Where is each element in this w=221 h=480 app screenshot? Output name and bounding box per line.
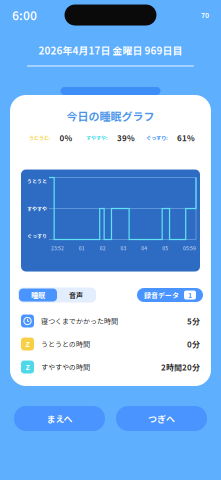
staticText: うとうと	[27, 177, 47, 185]
staticText: 録音データ	[144, 290, 179, 300]
staticText: 2時間20分	[161, 361, 200, 373]
button[interactable]: 睡眠	[19, 288, 57, 301]
button[interactable]: 音声	[57, 288, 95, 301]
staticText: まえへ	[46, 412, 72, 425]
staticText: 寝つくまでかかった時間	[41, 316, 118, 326]
staticText: 睡眠	[31, 290, 45, 300]
staticText: 0分	[187, 338, 200, 350]
button[interactable]: Z	[21, 355, 200, 378]
staticText: 05:59	[183, 244, 196, 252]
button[interactable]: 録音データ	[137, 288, 203, 302]
staticText: すやすやの時間	[41, 362, 90, 372]
staticText: 03	[120, 244, 126, 252]
staticText: 6:00	[12, 6, 37, 24]
staticText: 音声	[69, 290, 83, 300]
staticText: 0%	[59, 132, 72, 143]
staticText: ぐっすり:	[146, 134, 168, 142]
staticText: うとうとの時間	[41, 339, 90, 349]
staticText: 01	[79, 244, 85, 252]
staticText: すやすや	[27, 205, 47, 212]
button[interactable]: Z	[21, 332, 200, 355]
staticText: 2026年4月17日 金曜日 969日目	[38, 43, 182, 57]
staticText: ぐっすり	[27, 232, 47, 239]
staticText: つぎへ	[148, 412, 175, 425]
staticText: 61%	[177, 132, 195, 143]
staticText: 39%	[117, 132, 135, 143]
staticText: Z	[25, 339, 29, 349]
staticText: すやすや:	[86, 134, 108, 142]
button[interactable]: まえへ	[14, 406, 105, 431]
button[interactable]: 寝つくまでかかった時間	[21, 309, 200, 332]
staticText: 1	[188, 290, 192, 300]
staticText: 5分	[187, 315, 200, 327]
staticText: 今日の睡眠グラフ	[66, 108, 154, 124]
staticText: Z	[25, 362, 29, 372]
button[interactable]: つぎへ	[116, 406, 207, 431]
staticText: 02	[100, 244, 106, 252]
staticText: 05	[162, 244, 168, 252]
staticText: 04	[141, 244, 147, 252]
staticText: 70	[201, 10, 209, 20]
staticText: 23:52	[51, 244, 64, 252]
staticText: うとうと:	[28, 134, 50, 142]
